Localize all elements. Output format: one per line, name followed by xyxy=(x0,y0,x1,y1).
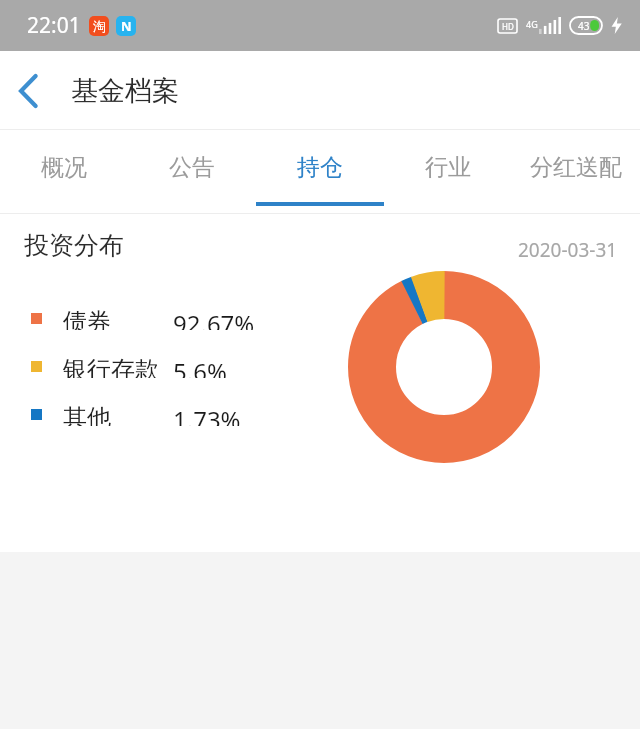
staticText: HD xyxy=(502,21,514,32)
staticText: 投资分布 xyxy=(24,230,124,261)
button[interactable]: Back xyxy=(0,63,56,119)
staticText: 43 xyxy=(578,19,590,33)
staticText: 基金档案 xyxy=(71,74,179,108)
staticText: 其他 xyxy=(63,403,111,426)
staticText: 22:01 xyxy=(27,11,81,40)
button[interactable]: 概况 xyxy=(0,130,128,214)
staticText: 4G xyxy=(526,18,538,30)
staticText: 1.73% xyxy=(173,403,241,426)
button[interactable]: 公告 xyxy=(128,130,256,214)
staticText: 行业 xyxy=(425,153,471,182)
staticText: 债券 xyxy=(63,307,111,330)
button[interactable]: 持仓 xyxy=(256,130,384,214)
staticText: 银行存款 xyxy=(63,355,159,378)
staticText: N xyxy=(121,17,132,35)
staticText: 淘 xyxy=(93,18,106,34)
staticText: 2020-03-31 xyxy=(518,237,618,263)
staticText: 92.67% xyxy=(173,307,255,330)
staticText: 概况 xyxy=(41,153,87,182)
button[interactable]: 行业 xyxy=(384,130,512,214)
staticText: 分红送配 xyxy=(530,153,622,182)
staticText: 5.6% xyxy=(173,355,227,378)
staticText: 持仓 xyxy=(297,153,343,182)
button[interactable]: 分红送配 xyxy=(512,130,640,214)
staticText: 公告 xyxy=(169,153,215,182)
